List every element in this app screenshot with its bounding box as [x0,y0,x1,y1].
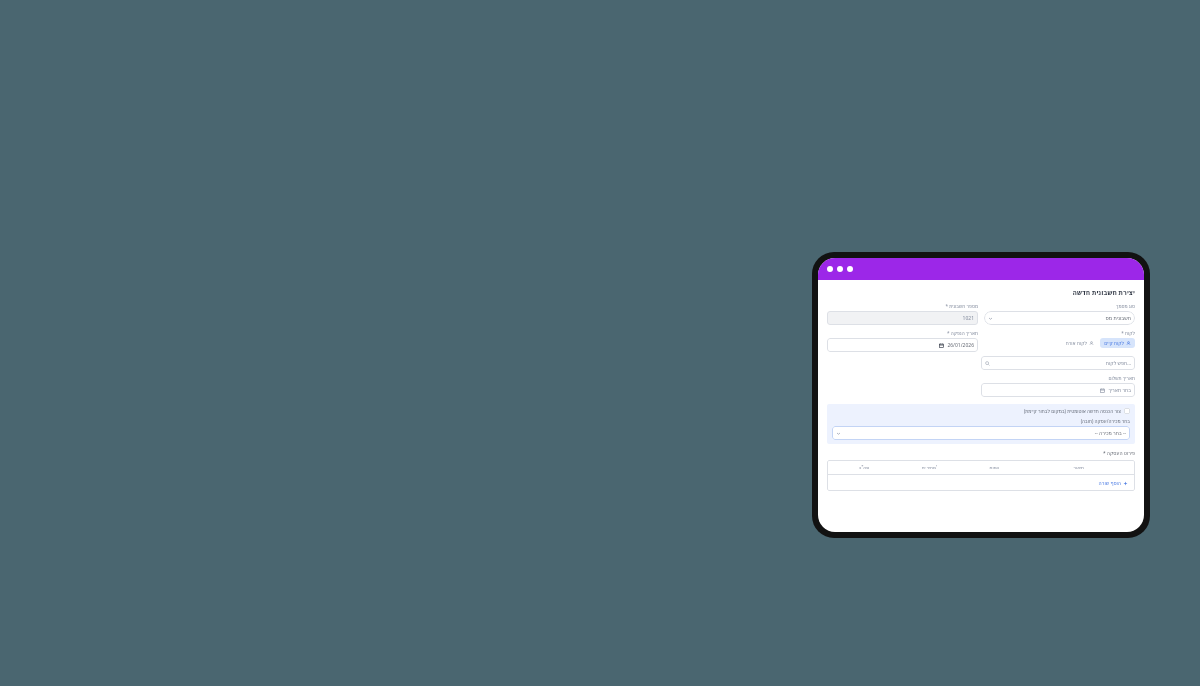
button[interactable]: בחר תאריך [981,383,1135,397]
staticText: * לקוח [984,330,1135,336]
staticText: לקוח אורח [1065,340,1087,346]
staticText: סה"כ [859,464,869,470]
staticText: בחר תאריך [1108,387,1131,394]
button[interactable]: 1021 [827,311,978,325]
staticText: תיאור [1073,465,1084,470]
button[interactable]: -- בחר מכירה -- [832,426,1130,440]
staticText: 1021 [962,315,974,322]
button[interactable]: חשבונית מס [984,311,1135,325]
button[interactable]: הוסף שורה [1096,478,1130,489]
staticText: חשבונית מס [1105,315,1131,322]
staticText: * תאריך הנפקה [827,330,978,336]
button[interactable]: 26/01/2026 [827,338,978,352]
staticText: צור הכנסה חדשה אוטומטית (במקום לבחור קיי… [1023,408,1121,414]
staticText: * מספר חשבונית [827,303,978,309]
staticText: יצירת חשבונית חדשה [827,288,1135,297]
button[interactable]: לקוח אורח [1062,338,1097,348]
button[interactable]: Window control [827,266,833,272]
button[interactable]: Window control [847,266,853,272]
button[interactable]: חפש לקוח... [981,356,1135,370]
staticText: בחר מכירה/עסקה (חובה) [832,418,1130,424]
staticText: * פירוט העסקה [827,450,1135,457]
staticText: לקוח קיים [1104,340,1124,346]
staticText: חפש לקוח... [1105,360,1131,367]
button[interactable]: לקוח קיים [1100,338,1135,348]
staticText: הוסף שורה [1098,480,1121,487]
staticText: מחיר יח' [921,464,937,470]
staticText: סוג מסמך [984,303,1135,309]
button[interactable]: צור הכנסה חדשה אוטומטית (במקום לבחור קיי… [832,408,1130,414]
staticText: כמות [989,465,999,470]
staticText: 26/01/2026 [947,342,974,349]
button[interactable]: Window control [837,266,843,272]
staticText: תאריך תשלום [981,375,1135,381]
staticText: -- בחר מכירה -- [1094,430,1126,437]
